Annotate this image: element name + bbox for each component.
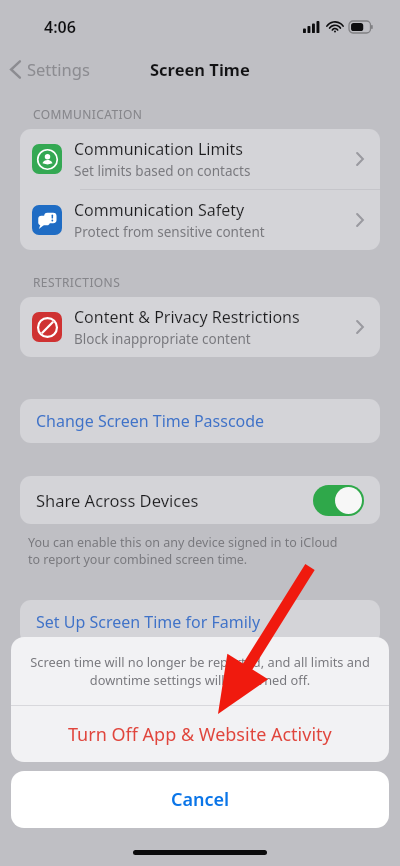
- button[interactable]: Share Across Devices: [20, 476, 380, 524]
- staticText: Cancel: [171, 787, 230, 812]
- button[interactable]: Communication Limits: [20, 129, 380, 189]
- staticText: COMMUNICATION: [33, 106, 143, 122]
- button[interactable]: Change Screen Time Passcode: [20, 399, 380, 443]
- staticText: Content & Privacy Restrictions: [74, 306, 300, 328]
- button[interactable]: Share Across Devices toggle, on: [313, 485, 364, 516]
- staticText: Turn Off App & Website Activity: [68, 722, 332, 747]
- staticText: Share Across Devices: [36, 489, 199, 511]
- staticText: RESTRICTIONS: [33, 274, 121, 290]
- staticText: Communication Limits: [74, 138, 243, 160]
- staticText: Screen time will no longer be reported, …: [29, 653, 371, 689]
- staticText: Communication Safety: [74, 199, 245, 221]
- staticText: Set limits based on contacts: [74, 162, 251, 180]
- button[interactable]: Communication Safety: [20, 190, 380, 250]
- staticText: Screen Time: [150, 58, 250, 80]
- staticText: Protect from sensitive content: [74, 223, 265, 241]
- staticText: 4:06: [44, 16, 76, 38]
- button[interactable]: Set Up Screen Time for Family: [20, 600, 380, 644]
- staticText: Settings: [27, 58, 90, 80]
- staticText: Change Screen Time Passcode: [36, 410, 265, 432]
- button[interactable]: Turn Off App & Website Activity: [11, 706, 389, 762]
- button[interactable]: Content & Privacy Restrictions: [20, 297, 380, 357]
- button[interactable]: Settings: [0, 53, 102, 85]
- staticText: You can enable this on any device signed…: [28, 534, 338, 568]
- staticText: Block inappropriate content: [74, 330, 251, 348]
- button[interactable]: Cancel: [11, 771, 389, 828]
- staticText: Set Up Screen Time for Family: [36, 611, 261, 633]
